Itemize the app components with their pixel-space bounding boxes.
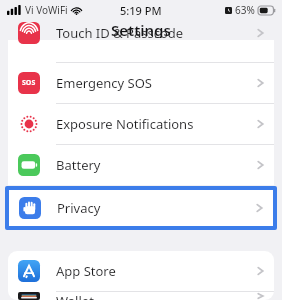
staticText: Emergency SOS [56, 74, 152, 92]
staticText: SOS [22, 78, 36, 88]
button[interactable]: Wallet [8, 292, 274, 300]
staticText: 63% [235, 3, 255, 17]
button[interactable]: Battery [8, 145, 274, 185]
staticText: Battery [56, 156, 101, 174]
button[interactable]: App Store [8, 251, 274, 291]
staticText: Touch ID & Passcode [56, 24, 184, 42]
button[interactable]: Exposure Notifications [8, 104, 274, 144]
button[interactable]: SOS [8, 63, 274, 103]
staticText: Settings [111, 20, 171, 38]
staticText: Wallet [56, 292, 94, 300]
button[interactable]: Privacy [9, 190, 273, 226]
button[interactable]: Touch ID & Passcode [8, 40, 274, 62]
staticText: Vi VoWiFi [25, 3, 68, 17]
staticText: Exposure Notifications [56, 115, 194, 133]
staticText: App Store [56, 262, 116, 280]
staticText: Privacy [57, 199, 101, 217]
staticText: 5:19 PM [120, 3, 162, 18]
